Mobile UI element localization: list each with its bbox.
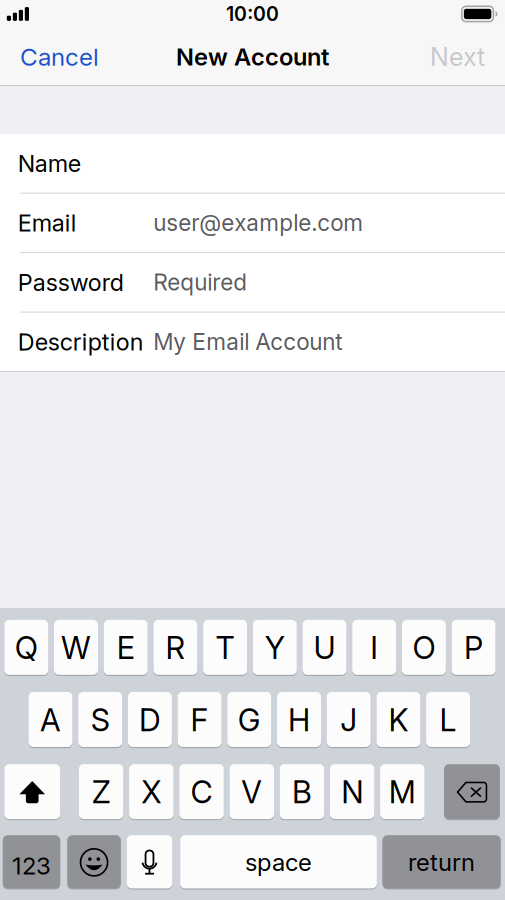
staticText: G (238, 701, 261, 739)
staticText: S (91, 701, 110, 739)
staticText: return (408, 848, 475, 877)
button[interactable]: K (376, 692, 420, 748)
staticText: B (292, 774, 312, 811)
staticText: E (117, 629, 135, 666)
button[interactable]: V (229, 764, 274, 820)
staticText: K (388, 701, 408, 739)
staticText: W (61, 629, 91, 666)
staticText: O (412, 629, 435, 666)
staticText: L (440, 701, 457, 739)
button[interactable]: C (179, 764, 224, 820)
button[interactable]: Q (4, 620, 48, 676)
staticText: C (191, 774, 213, 811)
staticText: Description (18, 328, 144, 356)
staticText: Name (18, 149, 81, 178)
button[interactable]: Cancel (16, 36, 103, 77)
button[interactable]: return (382, 835, 501, 889)
staticText: Password (18, 268, 124, 297)
button[interactable]: space (180, 835, 377, 889)
button[interactable]: B (280, 764, 324, 820)
button[interactable]: U (302, 620, 346, 676)
button[interactable]: A (28, 692, 72, 748)
button[interactable]: N (330, 764, 374, 820)
button[interactable]: O (402, 620, 446, 676)
button[interactable]: I (352, 620, 396, 676)
button[interactable]: J (327, 692, 371, 748)
staticText: M (389, 774, 416, 811)
button[interactable]: G (227, 692, 271, 748)
button[interactable]: Name (0, 134, 505, 193)
button[interactable]: W (54, 620, 98, 676)
staticText: I (370, 629, 378, 666)
button[interactable]: S (78, 692, 122, 748)
staticText: Next (430, 41, 485, 72)
staticText: Email (18, 209, 77, 237)
staticText: 10:00 (226, 2, 279, 26)
button[interactable]: Password (0, 253, 505, 312)
button[interactable]: X (129, 764, 174, 820)
staticText: R (165, 629, 185, 666)
staticText: U (313, 629, 335, 666)
staticText: Y (265, 629, 285, 666)
staticText: Cancel (20, 42, 99, 71)
staticText: 123 (12, 851, 51, 880)
button[interactable]: Emoji (67, 835, 121, 889)
button[interactable]: L (426, 692, 470, 748)
button[interactable]: M (380, 764, 425, 820)
staticText: J (340, 701, 357, 739)
staticText: D (139, 701, 161, 739)
button[interactable]: Description (0, 312, 505, 371)
staticText: Q (15, 629, 38, 666)
button[interactable]: R (153, 620, 197, 676)
staticText: space (245, 848, 312, 877)
button[interactable]: Next (426, 35, 489, 78)
staticText: H (288, 701, 310, 739)
button[interactable]: 123 (3, 835, 60, 889)
staticText: Z (92, 774, 111, 811)
staticText: A (40, 701, 61, 739)
button[interactable]: F (178, 692, 222, 748)
staticText: V (241, 774, 262, 811)
staticText: X (141, 774, 161, 811)
staticText: N (341, 774, 363, 811)
button[interactable]: Z (79, 764, 123, 820)
staticText: My Email Account (153, 328, 342, 355)
button[interactable]: H (277, 692, 321, 748)
staticText: New Account (176, 42, 329, 71)
staticText: P (464, 629, 483, 666)
staticText: F (191, 701, 209, 739)
button[interactable]: Shift (4, 764, 60, 820)
button[interactable]: Y (253, 620, 297, 676)
button[interactable]: P (452, 620, 496, 676)
button[interactable]: E (104, 620, 148, 676)
staticText: T (216, 629, 235, 666)
staticText: user@example.com (153, 209, 363, 236)
button[interactable]: Email (0, 193, 505, 252)
staticText: Required (153, 269, 247, 296)
button[interactable]: Delete (444, 764, 500, 820)
button[interactable]: Dictate (127, 835, 172, 889)
button[interactable]: T (203, 620, 247, 676)
button[interactable]: D (128, 692, 172, 748)
